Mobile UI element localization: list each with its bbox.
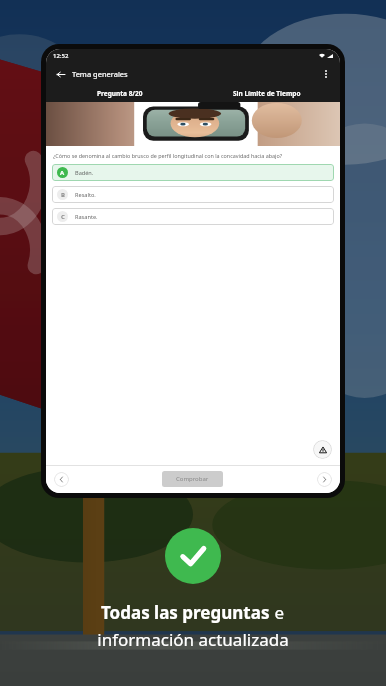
button[interactable]: A [52, 164, 334, 181]
staticText: Tema generales [72, 69, 128, 79]
staticText: Todas las preguntas [101, 601, 270, 624]
button[interactable]: C [52, 208, 334, 225]
staticText: ¿Cómo se denomina al cambio brusco de pe… [53, 152, 333, 159]
staticText: A [60, 169, 65, 177]
staticText: Comprobar [176, 475, 209, 483]
staticText: Resalto. [75, 191, 96, 199]
staticText: Badén. [75, 169, 94, 177]
button[interactable]: Report question [313, 440, 332, 459]
staticText: C [61, 213, 65, 221]
staticText: Rasante. [75, 213, 98, 221]
staticText: Pregunta 8/20 [97, 89, 143, 98]
button[interactable]: B [52, 186, 334, 203]
staticText: información actualizada [97, 628, 289, 651]
staticText: 12:52 [53, 52, 69, 60]
button[interactable]: More options [319, 67, 333, 81]
staticText: Sin Límite de Tiempo [233, 89, 301, 98]
button[interactable]: Previous question [54, 472, 69, 487]
button[interactable]: Comprobar [162, 471, 223, 487]
staticText: B [61, 191, 65, 199]
staticText: e [270, 601, 285, 624]
button[interactable]: Back [53, 67, 67, 81]
button[interactable]: Next question [317, 472, 332, 487]
